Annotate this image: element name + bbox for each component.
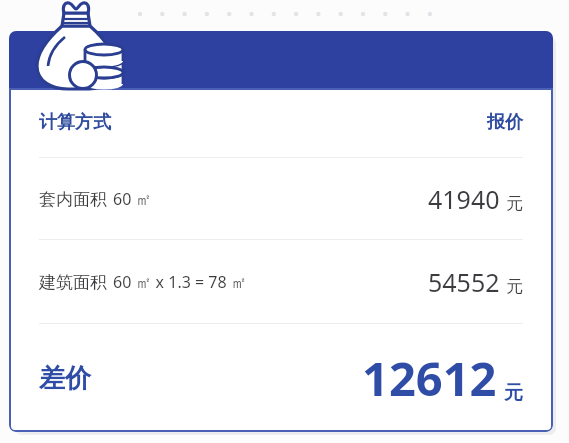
button[interactable]: 建筑面积	[9, 240, 553, 323]
staticText: 54552	[428, 265, 500, 299]
staticText: 元	[506, 193, 523, 214]
staticText: 60 ㎡	[113, 188, 152, 210]
staticText: 12612	[362, 346, 497, 410]
button[interactable]: 差价	[9, 324, 553, 432]
staticText: 60 ㎡ x 1.3 = 78 ㎡	[113, 271, 247, 293]
staticText: 建筑面积	[39, 272, 107, 293]
button[interactable]: 套内面积	[9, 158, 553, 239]
staticText: 计算方式	[39, 111, 111, 134]
staticText: 元	[504, 381, 523, 405]
button[interactable]: 计算方式	[9, 88, 553, 157]
other: Money bag	[31, 1, 125, 94]
staticText: 差价	[39, 362, 91, 395]
staticText: 元	[506, 276, 523, 297]
staticText: 报价	[487, 111, 523, 134]
button[interactable]: 计算方式	[9, 31, 553, 432]
staticText: 41940	[428, 182, 500, 216]
staticText: 套内面积	[39, 189, 107, 210]
